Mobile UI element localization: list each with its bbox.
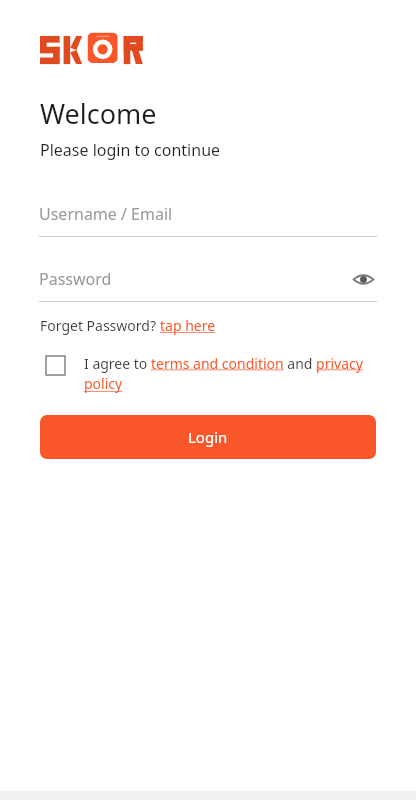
staticText: Password — [39, 268, 112, 290]
staticText: Login — [188, 427, 228, 447]
button[interactable]: Password — [39, 268, 349, 290]
button[interactable]: Agree to terms checkbox — [40, 350, 70, 380]
staticText: Username / Email — [39, 203, 173, 225]
button[interactable]: Login — [40, 415, 376, 459]
button[interactable]: tap here — [160, 316, 216, 335]
staticText: I agree to terms and condition and priva… — [84, 354, 386, 394]
button[interactable]: Show password — [349, 265, 377, 293]
button[interactable]: Username / Email — [39, 192, 377, 236]
staticText: Forget Password? — [40, 316, 160, 335]
staticText: Welcome — [40, 95, 157, 132]
staticText: Please login to continue — [40, 139, 221, 161]
staticText: tap here — [160, 316, 216, 335]
button[interactable]: I agree to terms and condition and priva… — [84, 350, 386, 394]
